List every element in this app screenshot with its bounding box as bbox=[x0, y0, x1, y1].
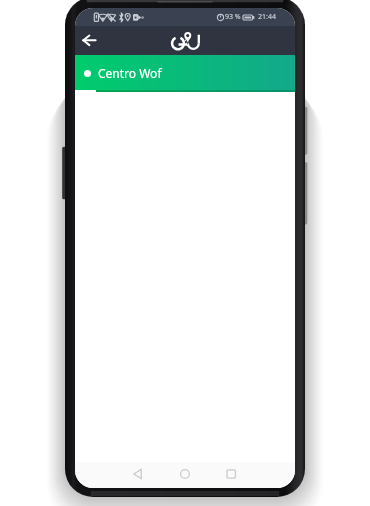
staticText: Centro Wof bbox=[98, 65, 162, 81]
button[interactable]: Back bbox=[75, 26, 104, 55]
staticText: 93 % bbox=[225, 12, 241, 22]
staticText: 21:44 bbox=[258, 12, 276, 22]
button[interactable]: Centro Wof bbox=[75, 55, 295, 90]
